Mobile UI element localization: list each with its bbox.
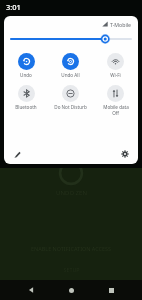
button[interactable]: Undo bbox=[4, 52, 48, 79]
button[interactable]: Do Not Disturb bbox=[48, 84, 93, 111]
button[interactable]: Undo All bbox=[48, 52, 93, 79]
staticText: Off bbox=[112, 110, 119, 116]
staticText: Bluetooth bbox=[15, 104, 37, 110]
staticText: T-Mobile bbox=[110, 21, 131, 28]
button[interactable]: Brightness bbox=[11, 32, 131, 46]
staticText: Do Not Disturb bbox=[54, 104, 87, 110]
staticText: Undo bbox=[20, 72, 32, 78]
staticText: Mobile data bbox=[103, 104, 129, 110]
button[interactable]: Bluetooth bbox=[4, 84, 48, 111]
button[interactable]: Recent apps bbox=[102, 281, 120, 299]
button[interactable]: Home bbox=[62, 281, 80, 299]
button[interactable]: Settings bbox=[118, 147, 132, 161]
staticText: 3:01 bbox=[6, 2, 21, 12]
staticText: Wi-Fi bbox=[110, 72, 121, 78]
staticText: ENABLE NOTIFICATION ACCESS bbox=[31, 245, 111, 252]
staticText: Undo All bbox=[61, 72, 80, 78]
button[interactable]: Mobile data bbox=[93, 84, 138, 117]
button[interactable]: Edit tiles bbox=[10, 147, 24, 161]
button[interactable]: Wi-Fi bbox=[93, 52, 138, 79]
button[interactable]: Back bbox=[22, 281, 40, 299]
